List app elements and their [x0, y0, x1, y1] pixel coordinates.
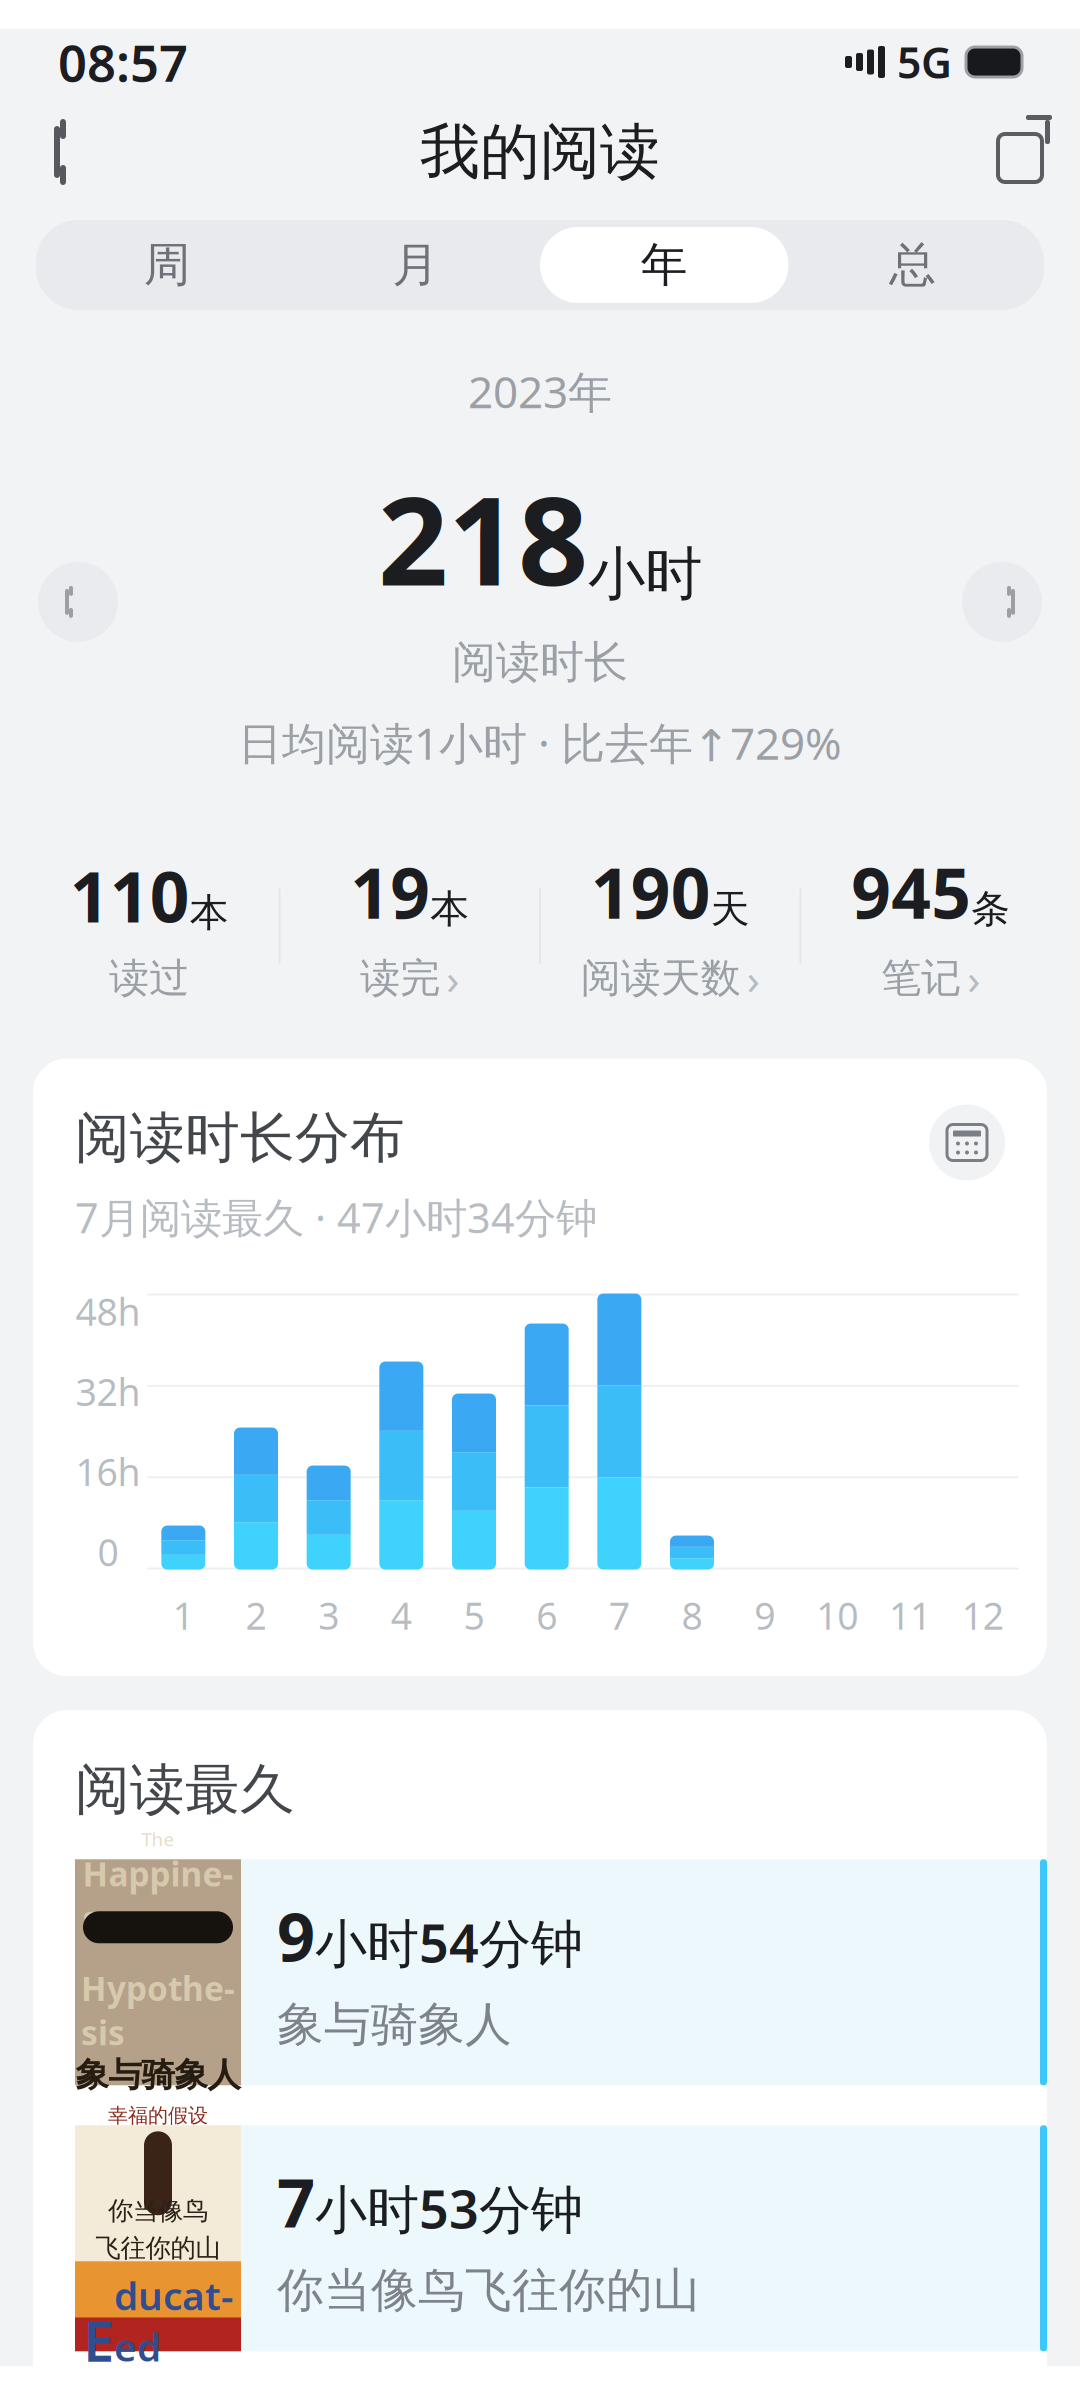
staticText: 1: [173, 1591, 194, 1640]
staticText: Happiness: [82, 1851, 233, 1940]
staticText: 小时54分钟: [315, 1908, 583, 1977]
button[interactable]: 分享: [970, 102, 1070, 202]
staticText: 小时: [588, 539, 702, 609]
button[interactable]: 下一年: [962, 562, 1042, 642]
button[interactable]: 110: [20, 844, 278, 1009]
staticText: 3: [318, 1591, 339, 1640]
button[interactable]: 月: [291, 227, 540, 303]
staticText: 19: [350, 846, 430, 938]
staticText: 0: [97, 1527, 118, 1577]
staticText: 本: [430, 885, 469, 933]
staticText: 象与骑象人: [277, 1996, 512, 2053]
button[interactable]: 上一年: [38, 562, 118, 642]
staticText: 阅读最久: [75, 1756, 295, 1823]
staticText: ›: [967, 950, 980, 1007]
button[interactable]: 年: [540, 227, 788, 303]
staticText: 4: [391, 1591, 412, 1640]
button[interactable]: 你当像鸟: [33, 2125, 1047, 2351]
staticText: 读过: [109, 954, 189, 1003]
staticText: 110: [70, 850, 190, 942]
staticText: 幸福的假设: [108, 2103, 208, 2128]
staticText: 阅读时长: [452, 635, 628, 689]
staticText: 190: [591, 846, 711, 938]
staticText: 日均阅读1小时 · 比去年↑729%: [238, 713, 842, 772]
staticText: 总: [889, 236, 936, 294]
staticText: 08:57: [58, 28, 188, 96]
staticText: 11: [889, 1591, 931, 1640]
staticText: 9: [754, 1591, 775, 1640]
button[interactable]: 945: [801, 840, 1060, 1012]
staticText: 5: [463, 1591, 484, 1640]
staticText: ducated: [114, 2270, 233, 2372]
staticText: 小时53分钟: [315, 2174, 583, 2243]
staticText: 月: [392, 236, 439, 294]
button[interactable]: 选择日期: [929, 1104, 1005, 1180]
staticText: 5G: [897, 34, 952, 90]
staticText: 你当像鸟: [108, 2195, 208, 2226]
staticText: ›: [747, 950, 760, 1007]
staticText: 32h: [75, 1367, 140, 1416]
button[interactable]: 周: [43, 227, 291, 303]
staticText: 7: [277, 2157, 315, 2246]
staticText: 本: [190, 889, 229, 937]
staticText: 阅读时长分布: [75, 1104, 405, 1172]
staticText: 48h: [75, 1287, 140, 1336]
staticText: 我的阅读: [420, 115, 660, 189]
staticText: 218: [378, 456, 588, 619]
staticText: 象与骑象人: [75, 2054, 240, 2095]
staticText: 8: [681, 1591, 702, 1640]
staticText: ›: [446, 950, 459, 1007]
staticText: 你当像鸟飞往你的山: [277, 2262, 700, 2319]
staticText: Hypothesis: [81, 1966, 235, 2054]
staticText: 阅读天数: [581, 954, 741, 1003]
staticText: 年: [641, 236, 688, 294]
staticText: 16h: [75, 1447, 140, 1496]
staticText: 7月阅读最久 · 47小时34分钟: [75, 1190, 597, 1245]
staticText: 读完: [360, 954, 440, 1003]
button[interactable]: 190: [541, 840, 799, 1012]
button[interactable]: 总: [788, 227, 1037, 303]
staticText: 6: [536, 1591, 557, 1640]
staticText: 12: [962, 1591, 1004, 1640]
staticText: 7: [609, 1591, 630, 1640]
button[interactable]: 返回: [10, 102, 110, 202]
staticText: 2: [245, 1591, 266, 1640]
button[interactable]: The: [33, 1859, 1047, 2085]
staticText: 飞往你的山: [95, 2232, 220, 2263]
staticText: 笔记: [881, 954, 961, 1003]
staticText: E: [83, 2303, 114, 2377]
staticText: 945: [851, 846, 971, 938]
staticText: 天: [711, 885, 750, 933]
staticText: 条: [971, 885, 1010, 933]
button[interactable]: 19: [280, 840, 539, 1012]
staticText: 9: [277, 1891, 315, 1980]
staticText: 10: [816, 1591, 858, 1640]
staticText: 2023年: [468, 362, 612, 420]
staticText: The: [141, 1827, 174, 1851]
staticText: 周: [144, 236, 191, 294]
